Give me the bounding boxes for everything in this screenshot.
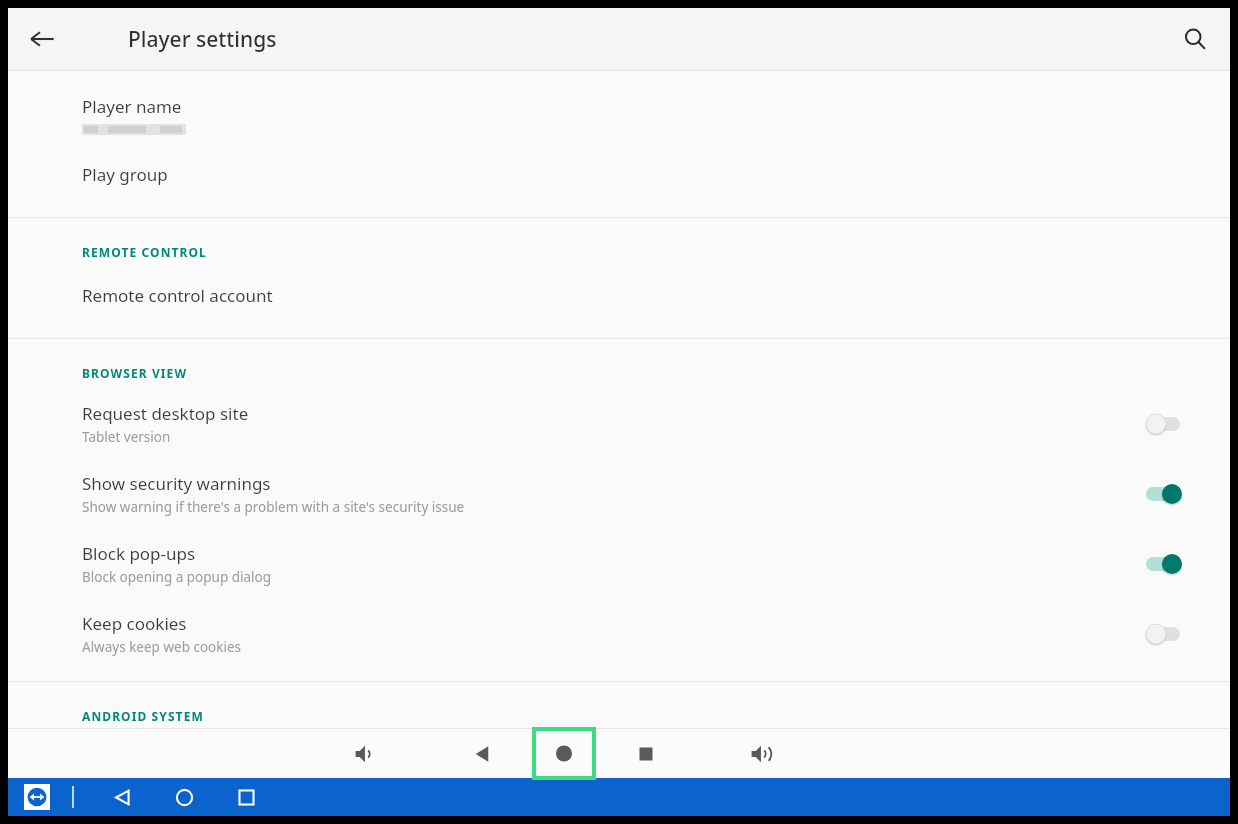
staticText: REMOTE CONTROL [82,244,207,260]
button[interactable]: Play group [8,147,1230,201]
staticText: Play group [82,163,168,186]
staticText: BROWSER VIEW [82,365,188,381]
button[interactable]: Volume down [336,729,396,778]
button[interactable]: Keep cookies [8,599,1230,669]
staticText: Remote control account [82,284,273,307]
staticText: Show warning if there's a problem with a… [82,498,465,516]
button[interactable]: Back [106,781,138,813]
button[interactable]: Switch to native android mode [8,732,1230,778]
button[interactable]: Block pop-ups [8,529,1230,599]
staticText: Always keep web cookies [82,638,242,656]
button[interactable]: Stop [616,729,676,778]
button[interactable]: Volume up [732,729,792,778]
button[interactable]: Search [1172,16,1218,62]
button[interactable]: On [1146,477,1198,511]
button[interactable]: Remote control account [8,268,1230,322]
button[interactable]: Off [1146,407,1198,441]
button[interactable]: Previous [452,729,512,778]
button[interactable]: On [1146,547,1198,581]
staticText: Player name [82,95,182,118]
staticText: Show security warnings [82,472,271,495]
staticText: Keep cookies [82,612,187,635]
staticText: Request desktop site [82,402,249,425]
button[interactable]: Player name [8,85,1230,147]
button[interactable]: Back [18,15,66,63]
staticText: ANDROID SYSTEM [82,708,204,724]
button[interactable]: Recents [230,781,262,813]
button[interactable]: TeamViewer [24,784,50,810]
staticText: Block opening a popup dialog [82,568,272,586]
staticText: Block pop-ups [82,542,196,565]
button[interactable]: Show security warnings [8,459,1230,529]
button[interactable]: Off [1146,617,1198,651]
button[interactable]: Home [168,781,200,813]
button[interactable]: Record [534,729,594,778]
staticText: Player settings [128,25,277,54]
button[interactable]: Request desktop site [8,389,1230,459]
staticText: Tablet version [82,428,171,446]
